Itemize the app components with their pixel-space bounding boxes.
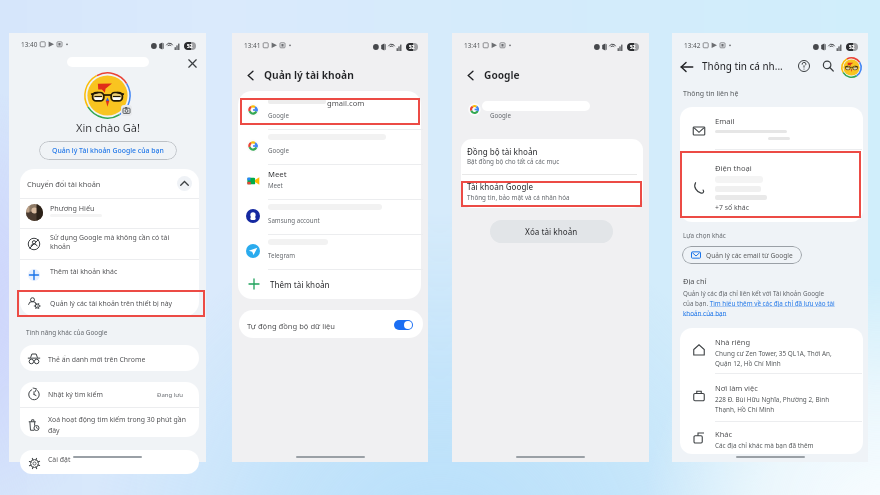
staticText: Cài đặt xyxy=(48,455,71,464)
staticText: 52 xyxy=(849,44,855,50)
button[interactable] xyxy=(680,328,863,373)
staticText: Thẻ ẩn danh mới trên Chrome xyxy=(48,355,146,364)
button[interactable] xyxy=(461,175,643,207)
button[interactable] xyxy=(20,259,199,290)
button[interactable] xyxy=(20,198,199,228)
button[interactable]: Search xyxy=(821,59,835,73)
button[interactable] xyxy=(20,450,199,474)
staticText: Quản lý các email từ Google xyxy=(706,251,793,260)
staticText: 13:41 xyxy=(244,41,261,50)
staticText: 52 xyxy=(630,44,636,50)
staticText: Xin chào Gà! xyxy=(76,120,140,135)
button[interactable] xyxy=(237,164,424,199)
staticText: Tài khoản Google xyxy=(467,181,534,192)
staticText: Google xyxy=(490,111,511,119)
button[interactable]: Quản lý các email từ Google xyxy=(682,246,802,264)
button[interactable] xyxy=(237,94,424,130)
button[interactable]: Back xyxy=(243,68,258,83)
button[interactable] xyxy=(680,107,863,149)
button[interactable] xyxy=(237,129,424,164)
button[interactable] xyxy=(680,373,863,421)
staticText: Quản lý Tài khoản Google của bạn xyxy=(52,146,164,155)
staticText: 228 Đ. Bùi Hữu Nghĩa, Phường 2, Bình Thạ… xyxy=(715,395,851,414)
staticText: Bật đồng bộ cho tất cả các mục xyxy=(467,157,560,166)
staticText: Đồng bộ tài khoản xyxy=(467,146,538,157)
staticText: Địa chỉ xyxy=(683,276,707,286)
staticText: 52 xyxy=(187,43,193,49)
staticText: Nơi làm việc xyxy=(715,383,758,393)
staticText: Google xyxy=(268,111,289,119)
staticText: Thông tin cá nh... xyxy=(702,60,783,73)
button[interactable] xyxy=(680,421,863,453)
button[interactable]: Back xyxy=(463,68,478,83)
staticText: Điện thoại xyxy=(715,163,752,173)
staticText: Phương Hiếu xyxy=(50,203,95,213)
staticText: +7 số khác xyxy=(715,203,750,212)
staticText: 52 xyxy=(409,44,415,50)
staticText: 13:41 xyxy=(464,41,481,50)
button[interactable]: Change photo xyxy=(121,105,132,116)
staticText: Thêm tài khoản xyxy=(270,279,330,290)
button[interactable] xyxy=(237,269,424,297)
button[interactable] xyxy=(20,407,199,437)
staticText: Thêm tài khoản khác xyxy=(50,267,118,276)
staticText: Quản lý các địa chỉ liên kết với Tài kho… xyxy=(683,289,835,317)
staticText: Đang lưu xyxy=(157,391,184,399)
button[interactable]: Help xyxy=(797,59,811,73)
button[interactable] xyxy=(237,234,424,269)
button[interactable] xyxy=(461,139,643,174)
button[interactable]: Profile xyxy=(841,57,862,78)
staticText: gmail.com xyxy=(327,98,365,108)
staticText: Tính năng khác của Google xyxy=(26,328,108,337)
button[interactable]: Close xyxy=(185,56,200,71)
staticText: Chuyển đổi tài khoản xyxy=(27,179,101,189)
staticText: Telegram xyxy=(268,251,296,259)
button[interactable] xyxy=(20,169,199,198)
button[interactable] xyxy=(20,290,199,317)
staticText: Email xyxy=(715,116,735,126)
staticText: 13:42 xyxy=(684,41,701,50)
button[interactable]: Collapse xyxy=(177,176,192,191)
staticText: Nhật ký tìm kiếm xyxy=(48,390,103,399)
staticText: Meet xyxy=(268,169,287,179)
staticText: Sử dụng Google mà không cần có tài khoản xyxy=(50,233,182,251)
staticText: Xóa tài khoản xyxy=(525,226,578,237)
button[interactable] xyxy=(680,149,863,221)
button[interactable]: Back xyxy=(679,59,695,75)
button[interactable] xyxy=(239,310,423,338)
staticText: 13:40 xyxy=(21,40,38,49)
staticText: Samsung account xyxy=(268,216,320,224)
staticText: Tự động đồng bộ dữ liệu xyxy=(247,321,336,331)
staticText: Các địa chỉ khác mà bạn đã thêm xyxy=(715,441,814,450)
staticText: Google xyxy=(484,68,520,82)
staticText: Meet xyxy=(268,181,283,189)
button[interactable]: Xóa tài khoản xyxy=(490,220,613,243)
staticText: Quản lý các tài khoản trên thiết bị này xyxy=(50,299,173,308)
staticText: Thông tin liên hệ xyxy=(683,89,739,99)
button[interactable] xyxy=(237,199,424,234)
button[interactable] xyxy=(20,345,199,371)
staticText: Nhà riêng xyxy=(715,337,751,347)
staticText: Khác xyxy=(715,429,733,439)
staticText: Xoá hoạt động tìm kiếm trong 30 phút gần… xyxy=(48,415,188,435)
staticText: Thông tin, bảo mật và cá nhân hóa xyxy=(467,193,570,202)
button[interactable] xyxy=(20,228,199,258)
staticText: Quản lý tài khoản xyxy=(264,68,354,82)
staticText: Chung cư Zen Tower, 35 QL1A, Thới An, Qu… xyxy=(715,349,846,368)
staticText: Google xyxy=(268,146,289,154)
staticText: Lựa chọn khác xyxy=(683,231,726,240)
button[interactable] xyxy=(20,382,199,407)
button[interactable]: Quản lý Tài khoản Google của bạn xyxy=(39,141,177,160)
